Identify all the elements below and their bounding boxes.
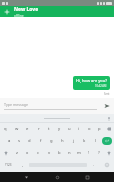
- button[interactable]: x: [22, 147, 33, 159]
- button[interactable]: i: [74, 123, 84, 135]
- button[interactable]: New chat: [0, 6, 14, 17]
- staticText: o: [88, 126, 91, 132]
- button[interactable]: q: [0, 123, 11, 135]
- staticText: q: [4, 126, 7, 132]
- staticText: u: [68, 126, 71, 132]
- staticText: e: [26, 126, 29, 132]
- button[interactable]: v: [44, 147, 54, 159]
- staticText: h: [61, 138, 64, 144]
- staticText: y: [58, 126, 61, 132]
- staticText: c: [37, 150, 40, 156]
- button[interactable]: w: [11, 123, 22, 135]
- staticText: f: [40, 138, 42, 144]
- staticText: ,: [22, 162, 24, 168]
- button[interactable]: Backspace: [104, 123, 114, 135]
- button[interactable]: f: [35, 135, 46, 147]
- button[interactable]: n: [64, 147, 74, 159]
- button[interactable]: ?: [94, 147, 104, 159]
- staticText: ?123: [5, 163, 12, 167]
- staticText: r: [38, 126, 40, 132]
- button[interactable]: ?123: [0, 159, 17, 171]
- button[interactable]: b: [54, 147, 64, 159]
- button[interactable]: Emoji: [99, 159, 114, 171]
- button[interactable]: !: [84, 147, 94, 159]
- button[interactable]: Hi, how are you?: [73, 76, 110, 90]
- button[interactable]: Voice input: [106, 116, 111, 121]
- staticText: g: [50, 138, 53, 144]
- button[interactable]: p: [94, 123, 104, 135]
- button[interactable]: m: [74, 147, 84, 159]
- button[interactable]: Shift: [0, 147, 11, 159]
- button[interactable]: t: [44, 123, 54, 135]
- staticText: p: [98, 126, 101, 132]
- staticText: i: [78, 126, 80, 132]
- staticText: w: [15, 126, 19, 132]
- button[interactable]: Type message: [4, 102, 97, 110]
- staticText: !: [88, 150, 90, 156]
- button[interactable]: Shift: [104, 147, 114, 159]
- staticText: New Love: [14, 6, 39, 13]
- button[interactable]: u: [64, 123, 74, 135]
- staticText: l: [95, 138, 97, 144]
- staticText: ?: [98, 150, 100, 156]
- button[interactable]: Back: [22, 173, 31, 182]
- staticText: d: [28, 138, 31, 144]
- button[interactable]: j: [68, 135, 79, 147]
- button[interactable]: a: [4, 135, 14, 147]
- staticText: s: [18, 138, 21, 144]
- button[interactable]: Recents: [83, 173, 92, 182]
- button[interactable]: Enter: [102, 137, 112, 145]
- button[interactable]: k: [79, 135, 90, 147]
- button[interactable]: c: [33, 147, 44, 159]
- staticText: k: [83, 138, 86, 144]
- staticText: z: [16, 150, 18, 156]
- button[interactable]: r: [33, 123, 44, 135]
- button[interactable]: e: [22, 123, 33, 135]
- button[interactable]: o: [84, 123, 94, 135]
- staticText: a: [8, 138, 11, 144]
- button[interactable]: Home: [53, 173, 62, 182]
- button[interactable]: ,: [17, 159, 28, 171]
- button[interactable]: d: [24, 135, 35, 147]
- staticText: Type message: [4, 102, 29, 107]
- button[interactable]: l: [90, 135, 101, 147]
- staticText: t: [48, 126, 50, 132]
- button[interactable]: Send: [100, 98, 114, 114]
- staticText: .: [93, 162, 95, 168]
- staticText: Sent: [104, 92, 110, 96]
- staticText: x: [26, 150, 29, 156]
- staticText: 10:42 AM: [95, 84, 107, 88]
- button[interactable]: s: [14, 135, 24, 147]
- button[interactable]: h: [57, 135, 68, 147]
- button[interactable]: z: [11, 147, 22, 159]
- staticText: j: [73, 138, 75, 144]
- button[interactable]: y: [54, 123, 64, 135]
- staticText: Hi, how are you?: [76, 78, 107, 83]
- staticText: offline: [14, 14, 24, 17]
- button[interactable]: New chat: [0, 6, 114, 17]
- staticText: b: [58, 150, 61, 156]
- staticText: n: [68, 150, 71, 156]
- staticText: v: [48, 150, 51, 156]
- staticText: m: [77, 150, 81, 156]
- button[interactable]: g: [46, 135, 57, 147]
